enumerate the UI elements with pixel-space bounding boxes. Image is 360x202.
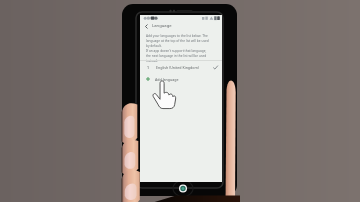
staticText: Add language [155,77,179,82]
staticText: Add your languages to the list below. Th… [146,34,210,48]
staticText: 1 [147,65,150,70]
staticText: Language [152,23,172,29]
button[interactable]: Back [142,22,150,30]
button[interactable]: Add language [140,73,222,85]
staticText: If an app doesn't support that language,… [146,49,210,63]
staticText: English (United Kingdom) [156,65,199,70]
button[interactable]: 1 [140,61,222,73]
